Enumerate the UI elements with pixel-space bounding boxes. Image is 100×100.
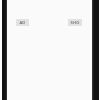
staticText: ADD — [18, 20, 27, 25]
button[interactable]: SHOW — [68, 19, 82, 26]
staticText: SHOW — [70, 20, 80, 25]
button[interactable]: ADD — [16, 19, 29, 26]
